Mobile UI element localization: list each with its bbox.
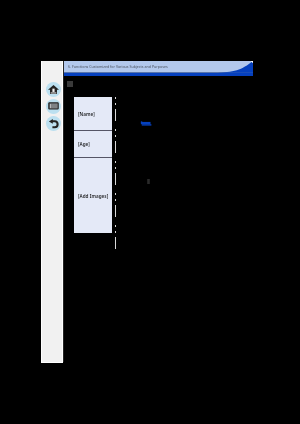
staticText: 6. Functions Customized for Various Subj… (68, 64, 168, 69)
button[interactable]: Back (46, 116, 61, 131)
staticText: [Age] (78, 141, 90, 147)
button[interactable]: Home (46, 82, 61, 97)
button[interactable]: [Name] (74, 97, 112, 130)
staticText: [Add Images] (78, 193, 109, 199)
staticText: [Name] (78, 111, 95, 117)
button[interactable]: 6. Functions Customized for Various Subj… (64, 61, 253, 76)
button[interactable]: Contents (46, 99, 61, 114)
button[interactable]: [Age] (74, 131, 112, 157)
button[interactable]: [Add Images] (74, 158, 112, 233)
